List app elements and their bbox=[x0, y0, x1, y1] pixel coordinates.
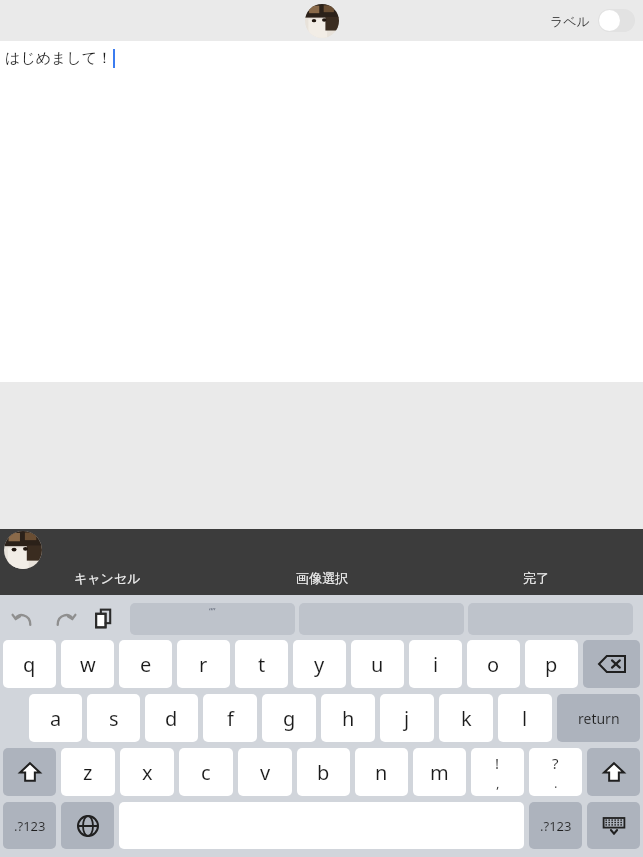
button[interactable]: Shift bbox=[587, 748, 640, 796]
button[interactable]: Redo bbox=[52, 606, 78, 632]
button[interactable]: Change keyboard language bbox=[61, 802, 114, 849]
staticText: f bbox=[227, 705, 234, 732]
button[interactable]: i bbox=[409, 640, 462, 688]
staticText: キャンセル bbox=[74, 570, 141, 586]
button[interactable]: r bbox=[177, 640, 230, 688]
staticText: h bbox=[342, 705, 355, 732]
staticText: .?123 bbox=[540, 817, 572, 835]
button[interactable]: u bbox=[351, 640, 404, 688]
button[interactable]: ラベル bbox=[550, 9, 635, 32]
button[interactable]: Profile photo bbox=[305, 4, 339, 38]
button[interactable]: Undo bbox=[10, 606, 36, 632]
staticText: y bbox=[314, 651, 325, 678]
staticText: , bbox=[496, 774, 500, 792]
button[interactable]: キャンセル bbox=[0, 567, 215, 589]
staticText: t bbox=[258, 651, 266, 678]
staticText: ラベル bbox=[550, 13, 590, 29]
button[interactable]: q bbox=[3, 640, 56, 688]
staticText: a bbox=[50, 705, 62, 732]
staticText: u bbox=[371, 651, 384, 678]
button[interactable]: 画像選択 bbox=[215, 567, 429, 589]
button[interactable]: f bbox=[203, 694, 257, 742]
staticText: q bbox=[23, 651, 36, 678]
button[interactable]: y bbox=[293, 640, 346, 688]
staticText: c bbox=[201, 759, 211, 786]
staticText: d bbox=[165, 705, 178, 732]
button[interactable]: m bbox=[413, 748, 466, 796]
staticText: m bbox=[430, 759, 449, 786]
button[interactable]: z bbox=[61, 748, 115, 796]
button[interactable]: p bbox=[525, 640, 578, 688]
button[interactable]: ! bbox=[471, 748, 524, 796]
staticText: g bbox=[283, 705, 296, 732]
staticText: return bbox=[578, 709, 620, 728]
button[interactable]: d bbox=[145, 694, 198, 742]
button[interactable]: n bbox=[355, 748, 408, 796]
staticText: k bbox=[461, 705, 472, 732]
staticText: o bbox=[487, 651, 500, 678]
button[interactable]: c bbox=[179, 748, 233, 796]
staticText: 画像選択 bbox=[296, 570, 348, 586]
staticText: z bbox=[83, 759, 93, 786]
button[interactable]: t bbox=[235, 640, 288, 688]
staticText: i bbox=[433, 651, 439, 678]
button[interactable]: a bbox=[29, 694, 82, 742]
staticText: ? bbox=[552, 753, 559, 773]
button[interactable]: x bbox=[120, 748, 174, 796]
button[interactable]: j bbox=[380, 694, 434, 742]
staticText: s bbox=[109, 705, 119, 732]
staticText: x bbox=[142, 759, 153, 786]
button[interactable]: .?123 bbox=[529, 802, 582, 849]
button[interactable]: e bbox=[119, 640, 172, 688]
button[interactable]: Copy bbox=[92, 606, 118, 632]
staticText: . bbox=[554, 774, 558, 792]
button[interactable]: Hide keyboard bbox=[587, 802, 640, 849]
staticText: v bbox=[260, 759, 271, 786]
staticText: ! bbox=[495, 753, 500, 773]
staticText: p bbox=[545, 651, 558, 678]
staticText: b bbox=[317, 759, 330, 786]
staticText: はじめまして！ bbox=[5, 49, 113, 68]
staticText: “” bbox=[209, 605, 216, 617]
button[interactable]: o bbox=[467, 640, 520, 688]
button[interactable]: 完了 bbox=[429, 567, 643, 589]
button[interactable]: Shift bbox=[3, 748, 56, 796]
button[interactable]: k bbox=[439, 694, 493, 742]
button[interactable]: w bbox=[61, 640, 114, 688]
staticText: r bbox=[199, 651, 208, 678]
staticText: e bbox=[140, 651, 152, 678]
button[interactable]: return bbox=[557, 694, 640, 742]
button[interactable]: s bbox=[87, 694, 140, 742]
staticText: .?123 bbox=[14, 817, 46, 835]
staticText: 完了 bbox=[523, 570, 549, 586]
staticText: j bbox=[404, 705, 410, 732]
button[interactable]: ? bbox=[529, 748, 582, 796]
button[interactable]: Backspace bbox=[583, 640, 640, 688]
button[interactable]: h bbox=[321, 694, 375, 742]
button[interactable]: v bbox=[238, 748, 292, 796]
staticText: w bbox=[80, 651, 96, 678]
button[interactable]: .?123 bbox=[3, 802, 56, 849]
button[interactable]: l bbox=[498, 694, 552, 742]
button[interactable]: Selected image bbox=[4, 531, 42, 569]
staticText: l bbox=[522, 705, 528, 732]
staticText: n bbox=[375, 759, 388, 786]
button[interactable]: b bbox=[297, 748, 350, 796]
button[interactable]: g bbox=[262, 694, 316, 742]
